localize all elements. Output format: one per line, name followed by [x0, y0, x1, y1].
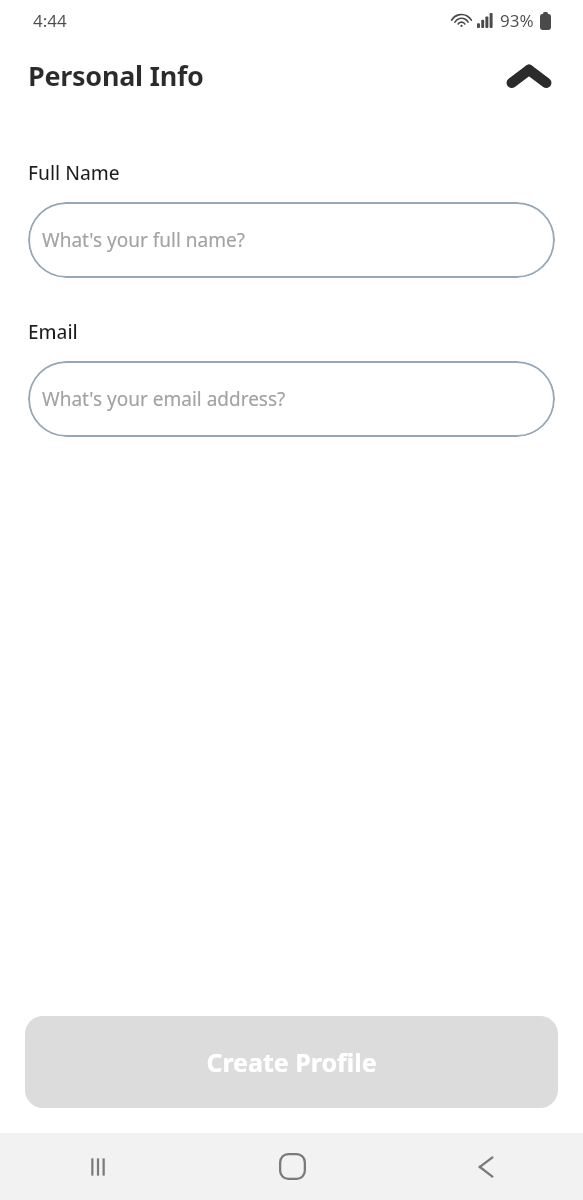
button[interactable]: What's your full name? — [28, 202, 555, 278]
button[interactable]: Recent apps — [0, 1133, 195, 1200]
staticText: Personal Info — [28, 57, 204, 94]
staticText: Create Profile — [206, 1045, 377, 1079]
button[interactable]: Collapse section — [503, 49, 555, 101]
button[interactable]: Home — [195, 1133, 389, 1200]
staticText: Full Name — [28, 160, 120, 186]
button[interactable]: Create Profile — [25, 1016, 558, 1108]
staticText: 4:44 — [33, 9, 67, 32]
button[interactable]: What's your email address? — [28, 361, 555, 437]
staticText: 93% — [500, 9, 534, 32]
staticText: What's your email address? — [42, 386, 286, 412]
staticText: Email — [28, 319, 78, 345]
button[interactable]: Back — [389, 1133, 583, 1200]
staticText: What's your full name? — [42, 227, 245, 253]
